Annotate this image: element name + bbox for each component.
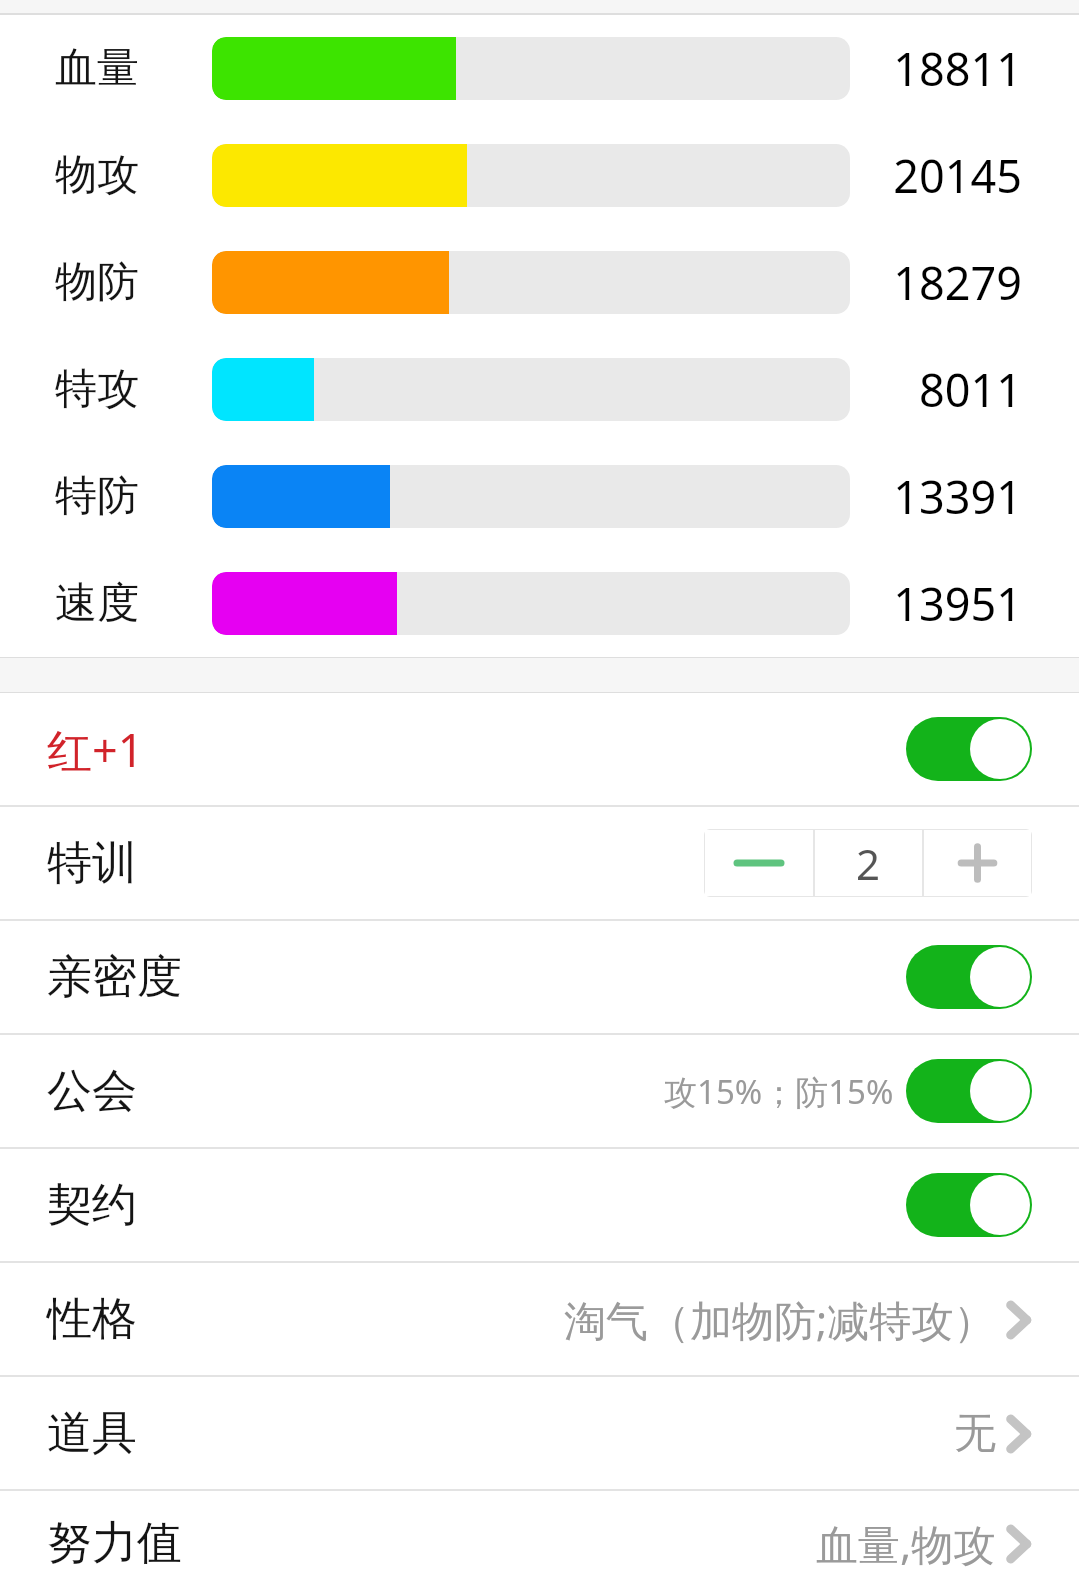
- staticText: 18279: [872, 252, 1022, 313]
- staticText: 2: [856, 835, 881, 892]
- staticText: 努力值: [47, 1515, 182, 1572]
- button[interactable]: 血量: [0, 15, 1079, 122]
- button[interactable]: 亲密度: [0, 921, 1079, 1033]
- button[interactable]: 契约: [0, 1149, 1079, 1261]
- staticText: 淘气（加物防;减特攻）: [564, 1291, 996, 1348]
- staticText: 8011: [872, 359, 1022, 420]
- staticText: 13391: [872, 466, 1022, 527]
- staticText: 红+1: [47, 719, 144, 780]
- button[interactable]: 速度: [0, 550, 1079, 657]
- button[interactable]: 公会: [0, 1035, 1079, 1147]
- staticText: 契约: [47, 1177, 137, 1234]
- button[interactable]: Toggle: [906, 717, 1032, 781]
- staticText: 性格: [47, 1291, 137, 1348]
- button[interactable]: 特防: [0, 443, 1079, 550]
- button[interactable]: 特训: [0, 807, 1079, 919]
- button[interactable]: 道具: [0, 1377, 1079, 1489]
- button[interactable]: 红+1: [0, 693, 1079, 805]
- staticText: 特攻: [55, 363, 139, 416]
- staticText: 亲密度: [47, 949, 182, 1006]
- button[interactable]: Increase: [923, 829, 1032, 897]
- staticText: 道具: [47, 1405, 137, 1462]
- staticText: 攻15%；防15%: [664, 1069, 894, 1114]
- staticText: 13951: [872, 573, 1022, 634]
- staticText: 物防: [55, 256, 139, 309]
- staticText: 血量: [55, 42, 139, 95]
- staticText: 速度: [55, 577, 139, 630]
- staticText: 18811: [872, 38, 1022, 99]
- staticText: 无: [954, 1407, 996, 1460]
- staticText: 公会: [47, 1063, 137, 1120]
- button[interactable]: 特攻: [0, 336, 1079, 443]
- button[interactable]: Toggle: [906, 1059, 1032, 1123]
- button[interactable]: 物攻: [0, 122, 1079, 229]
- button[interactable]: Toggle: [906, 1173, 1032, 1237]
- button[interactable]: Toggle: [906, 945, 1032, 1009]
- button[interactable]: 物防: [0, 229, 1079, 336]
- button[interactable]: Decrease: [704, 829, 814, 897]
- staticText: 20145: [872, 145, 1022, 206]
- staticText: 物攻: [55, 149, 139, 202]
- staticText: 血量,物攻: [816, 1515, 996, 1572]
- staticText: 特训: [47, 835, 137, 892]
- button[interactable]: 努力值: [0, 1491, 1079, 1596]
- staticText: 特防: [55, 470, 139, 523]
- button[interactable]: 性格: [0, 1263, 1079, 1375]
